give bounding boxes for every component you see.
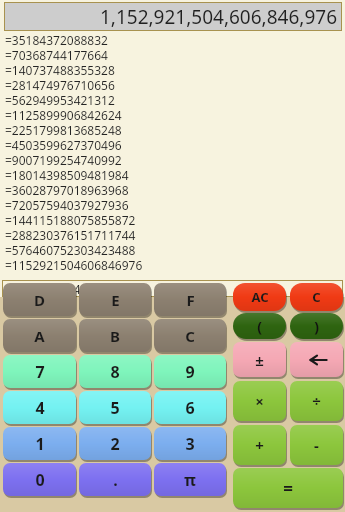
staticText: =562949953421312 — [5, 92, 115, 107]
staticText: + — [255, 435, 264, 455]
button[interactable]: =140737488355328 — [5, 62, 342, 77]
staticText: =576460752303423488 — [5, 242, 136, 257]
staticText: π — [184, 469, 196, 491]
staticText: F — [186, 290, 195, 310]
staticText: =140737488355328 — [5, 62, 115, 77]
staticText: ) — [314, 317, 319, 336]
button[interactable]: =288230376151711744 — [5, 227, 342, 242]
staticText: =288230376151711744 — [5, 227, 136, 242]
staticText: B — [110, 326, 120, 346]
button[interactable]: = — [233, 468, 343, 508]
button[interactable]: =281474976710656 — [5, 77, 342, 92]
staticText: =1125899906842624 — [5, 107, 122, 122]
staticText: =18014398509481984 — [5, 167, 129, 182]
staticText: C — [185, 326, 195, 346]
staticText: =4503599627370496 — [5, 137, 122, 152]
staticText: 0 — [35, 469, 45, 491]
button[interactable]: × — [233, 381, 286, 421]
staticText: =35184372088832 — [5, 32, 108, 47]
button[interactable]: ÷ — [290, 381, 343, 421]
staticText: 1 — [35, 433, 45, 455]
button[interactable]: 8 — [79, 355, 151, 388]
button[interactable]: 4 — [3, 391, 76, 424]
button[interactable]: =70368744177664 — [5, 47, 342, 62]
button[interactable]: π — [154, 463, 226, 496]
button[interactable]: =9007199254740992 — [5, 152, 342, 167]
staticText: =70368744177664 — [5, 47, 108, 62]
button[interactable]: =1125899906842624 — [5, 107, 342, 122]
button[interactable]: =562949953421312 — [5, 92, 342, 107]
staticText: ( — [257, 317, 262, 336]
staticText: 1,152,921,504,606,846,976 — [99, 4, 337, 30]
button[interactable]: . — [79, 463, 151, 496]
button[interactable]: 2 — [79, 427, 151, 460]
staticText: =9007199254740992 — [5, 152, 122, 167]
staticText: 8 — [110, 361, 120, 383]
staticText: D — [34, 290, 45, 310]
button[interactable]: ) — [290, 313, 343, 339]
staticText: AC — [251, 288, 269, 306]
button[interactable]: =35184372088832 — [5, 32, 342, 47]
staticText: C — [312, 288, 321, 306]
button[interactable]: =144115188075855872 — [5, 212, 342, 227]
button[interactable]: ± — [233, 342, 286, 377]
button[interactable]: 1 — [3, 427, 76, 460]
button[interactable]: =36028797018963968 — [5, 182, 342, 197]
button[interactable]: AC — [233, 283, 286, 311]
staticText: A — [34, 326, 45, 346]
staticText: . — [113, 469, 118, 491]
button[interactable]: C — [290, 283, 343, 311]
staticText: 7 — [35, 361, 45, 383]
button[interactable]: =2251799813685248 — [5, 122, 342, 137]
staticText: × — [255, 391, 264, 411]
staticText: =36028797018963968 — [5, 182, 129, 197]
button[interactable]: Backspace — [290, 342, 343, 377]
staticText: =281474976710656 — [5, 77, 115, 92]
button[interactable]: D — [3, 283, 76, 316]
button[interactable]: 0 — [3, 463, 76, 496]
button[interactable]: + — [233, 425, 286, 465]
button[interactable]: ( — [233, 313, 286, 339]
button[interactable]: F — [154, 283, 226, 316]
staticText: =2251799813685248 — [5, 122, 122, 137]
staticText: 4 — [35, 397, 45, 419]
button[interactable]: C — [154, 319, 226, 352]
staticText: 6 — [185, 397, 195, 419]
staticText: 5 — [110, 397, 120, 419]
staticText: ± — [255, 350, 264, 370]
button[interactable]: 3 — [154, 427, 226, 460]
staticText: =72057594037927936 — [5, 197, 129, 212]
staticText: =1152921504606846976 — [5, 281, 143, 296]
staticText: - — [314, 435, 319, 455]
button[interactable]: =1152921504606846976 — [3, 281, 342, 296]
staticText: 3 — [185, 433, 195, 455]
button[interactable]: =18014398509481984 — [5, 167, 342, 182]
staticText: 2 — [110, 433, 120, 455]
staticText: = — [283, 477, 293, 500]
button[interactable]: 5 — [79, 391, 151, 424]
button[interactable]: E — [79, 283, 151, 316]
button[interactable]: =576460752303423488 — [5, 242, 342, 257]
button[interactable]: 9 — [154, 355, 226, 388]
staticText: E — [111, 290, 120, 310]
staticText: 9 — [185, 361, 195, 383]
button[interactable]: 7 — [3, 355, 76, 388]
button[interactable]: 6 — [154, 391, 226, 424]
button[interactable]: 1,152,921,504,606,846,976 — [5, 3, 341, 30]
staticText: =1152921504606846976 — [5, 257, 143, 272]
button[interactable]: B — [79, 319, 151, 352]
button[interactable]: =72057594037927936 — [5, 197, 342, 212]
staticText: ÷ — [312, 391, 321, 411]
button[interactable]: =4503599627370496 — [5, 137, 342, 152]
button[interactable]: - — [290, 425, 343, 465]
button[interactable]: A — [3, 319, 76, 352]
button[interactable]: =1152921504606846976 — [5, 257, 342, 272]
staticText: =144115188075855872 — [5, 212, 136, 227]
